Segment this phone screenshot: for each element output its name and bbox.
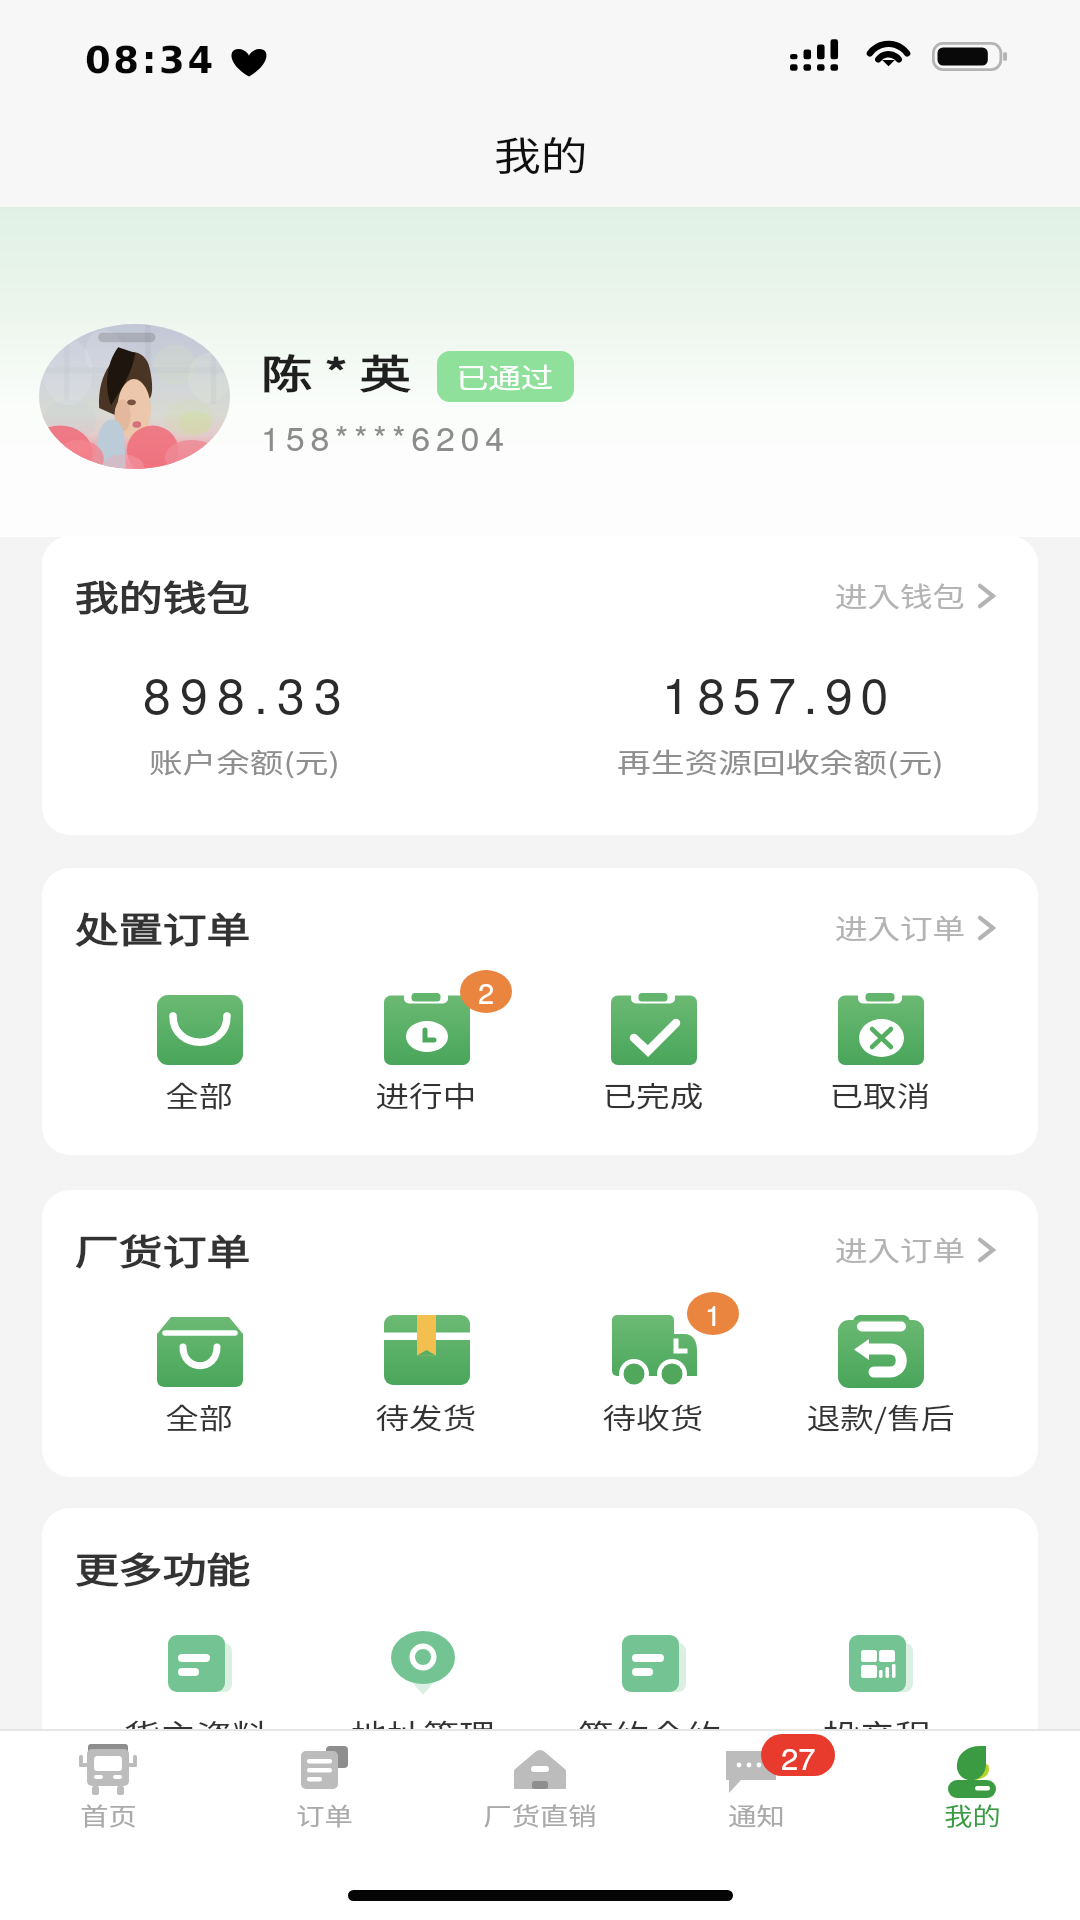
button[interactable]: Profile photo [39, 324, 230, 469]
staticText: 898.33 [143, 657, 352, 729]
staticText: 厂货直销 [484, 1798, 596, 1832]
staticText: 投产程 [823, 1711, 931, 1754]
staticText: 货主资料 [124, 1711, 268, 1754]
staticText: 再生资源回收余额(元) [617, 742, 944, 781]
staticText: 地址管理 [351, 1711, 495, 1754]
staticText: 进入订单 [835, 1230, 965, 1269]
staticText: 陈 * 英 [261, 343, 411, 399]
staticText: 待发货 [375, 1397, 477, 1438]
staticText: 厂货订单 [75, 1224, 252, 1275]
staticText: 全部 [165, 1397, 234, 1438]
staticText: 已取消 [829, 1075, 931, 1116]
staticText: 更多功能 [75, 1542, 252, 1593]
staticText: 订单 [296, 1798, 353, 1832]
button[interactable]: 货主资料 [82, 1629, 309, 1754]
button[interactable]: 全部 [86, 993, 313, 1116]
button[interactable]: 27 [648, 1744, 864, 1832]
staticText: 我的 [944, 1798, 1001, 1832]
button[interactable]: 已取消 [767, 993, 994, 1116]
button[interactable]: 1 [540, 1315, 767, 1438]
button[interactable]: 厂货直销 [432, 1744, 648, 1832]
staticText: 1 [705, 1293, 722, 1335]
staticText: 已通过 [456, 357, 553, 396]
staticText: 已完成 [602, 1075, 704, 1116]
staticText: 158****6204 [261, 412, 511, 461]
button[interactable]: 进入订单 [835, 908, 995, 947]
staticText: 处置订单 [75, 902, 252, 953]
button[interactable]: 待发货 [313, 1315, 540, 1438]
staticText: 我的 [494, 125, 589, 181]
staticText: 账户余额(元) [149, 742, 341, 781]
staticText: 2 [478, 971, 495, 1013]
button[interactable]: 2 [313, 993, 540, 1116]
staticText: 27 [781, 1734, 816, 1776]
button[interactable]: 进入订单 [835, 1230, 995, 1269]
button[interactable]: 签约合约 [536, 1629, 763, 1754]
staticText: 进入订单 [835, 908, 965, 947]
staticText: 我的钱包 [75, 570, 252, 621]
button[interactable]: 退款/售后 [767, 1315, 994, 1438]
button[interactable]: 已完成 [540, 993, 767, 1116]
button[interactable]: 投产程 [763, 1629, 990, 1754]
button[interactable]: 首页 [0, 1744, 216, 1832]
staticText: 待收货 [602, 1397, 704, 1438]
staticText: 08:34 [85, 39, 216, 82]
button[interactable]: 我的 [864, 1744, 1080, 1832]
staticText: 签约合约 [578, 1711, 722, 1754]
staticText: 进行中 [375, 1075, 477, 1116]
staticText: 通知 [728, 1798, 785, 1832]
button[interactable]: 已通过 [437, 351, 574, 402]
button[interactable]: 地址管理 [309, 1629, 536, 1754]
button[interactable]: 全部 [86, 1315, 313, 1438]
button[interactable]: 订单 [216, 1744, 432, 1832]
staticText: 全部 [165, 1075, 234, 1116]
staticText: 进入钱包 [835, 576, 965, 615]
button[interactable]: 进入钱包 [835, 576, 995, 615]
staticText: 退款/售后 [807, 1397, 954, 1438]
staticText: 首页 [80, 1798, 137, 1832]
staticText: 1857.90 [662, 657, 896, 729]
